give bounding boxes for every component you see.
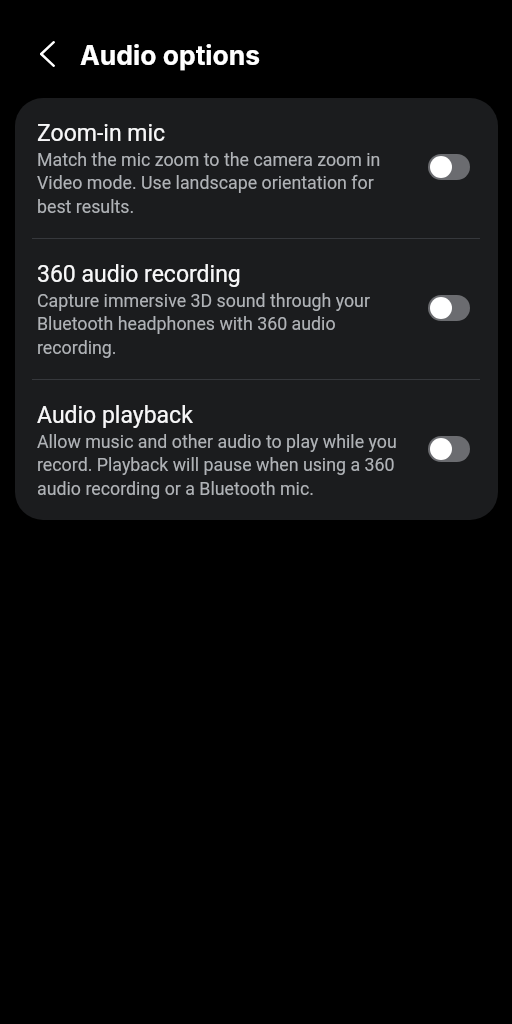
staticText: Audio options — [80, 39, 261, 71]
staticText: Audio playback — [37, 402, 193, 429]
staticText: Allow music and other audio to play whil… — [37, 431, 402, 499]
button[interactable]: 360 audio recording — [428, 295, 470, 321]
button[interactable]: Zoom-in mic — [15, 98, 498, 238]
button[interactable]: 360 audio recording — [15, 239, 498, 379]
button[interactable]: Back — [28, 35, 66, 73]
button[interactable]: Audio playback — [428, 436, 470, 462]
button[interactable]: Audio playback — [15, 380, 498, 520]
staticText: Match the mic zoom to the camera zoom in… — [37, 149, 402, 217]
staticText: 360 audio recording — [37, 261, 241, 288]
staticText: Capture immersive 3D sound through your … — [37, 290, 402, 358]
staticText: Zoom-in mic — [37, 120, 166, 147]
button[interactable]: Zoom-in mic — [428, 154, 470, 180]
